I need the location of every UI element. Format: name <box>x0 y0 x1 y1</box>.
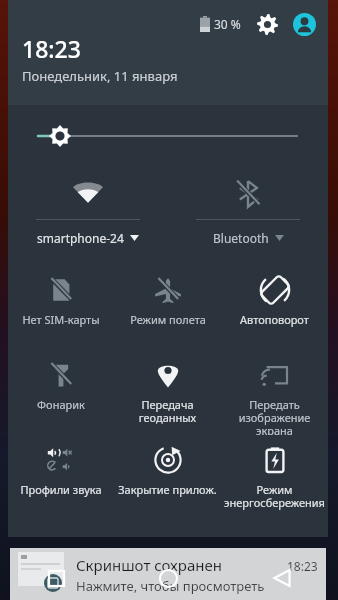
staticText: Закрытие прилож. <box>118 482 217 497</box>
button[interactable]: Home <box>112 556 225 600</box>
button[interactable]: Скриншот сохранен <box>10 548 326 600</box>
staticText: Передача геоданных <box>116 397 219 425</box>
staticText: Передать изображение экрана <box>223 397 326 435</box>
button[interactable]: Режим полета <box>114 265 221 350</box>
button[interactable]: Передать изображение экрана <box>221 350 328 435</box>
staticText: Нет SIM-карты <box>22 312 100 327</box>
staticText: Bluetooth <box>213 230 269 246</box>
button[interactable]: smartphone-24 <box>8 167 168 259</box>
button[interactable]: User profile <box>292 12 316 36</box>
button[interactable]: Передача геоданных <box>114 350 221 435</box>
button[interactable]: Bluetooth <box>168 167 328 259</box>
staticText: Скриншот сохранен <box>76 555 222 575</box>
button[interactable]: Recent apps <box>0 556 112 600</box>
button[interactable]: Профили звука <box>8 435 114 520</box>
staticText: Автоповорот <box>240 312 309 327</box>
staticText: smartphone-24 <box>37 230 124 246</box>
staticText: 18:23 <box>22 33 81 64</box>
staticText: 30 % <box>214 16 241 32</box>
staticText: Режим полета <box>130 312 206 327</box>
button[interactable]: Закрытие прилож. <box>114 435 221 520</box>
staticText: Нажмите, чтобы просмотреть <box>76 577 265 595</box>
staticText: Профили звука <box>20 482 102 497</box>
staticText: 18:23 <box>287 558 318 574</box>
staticText: Понедельник, 11 января <box>22 67 178 85</box>
button[interactable]: Нет SIM-карты <box>8 265 114 350</box>
button[interactable] <box>38 121 298 151</box>
button[interactable]: Режим энергосбережения <box>221 435 328 520</box>
button[interactable]: Settings <box>255 12 279 36</box>
staticText: Режим энергосбережения <box>224 482 325 510</box>
button[interactable]: Автоповорот <box>221 265 328 350</box>
button[interactable]: Back <box>225 556 338 600</box>
button[interactable]: Фонарик <box>8 350 114 435</box>
staticText: Фонарик <box>37 397 85 412</box>
